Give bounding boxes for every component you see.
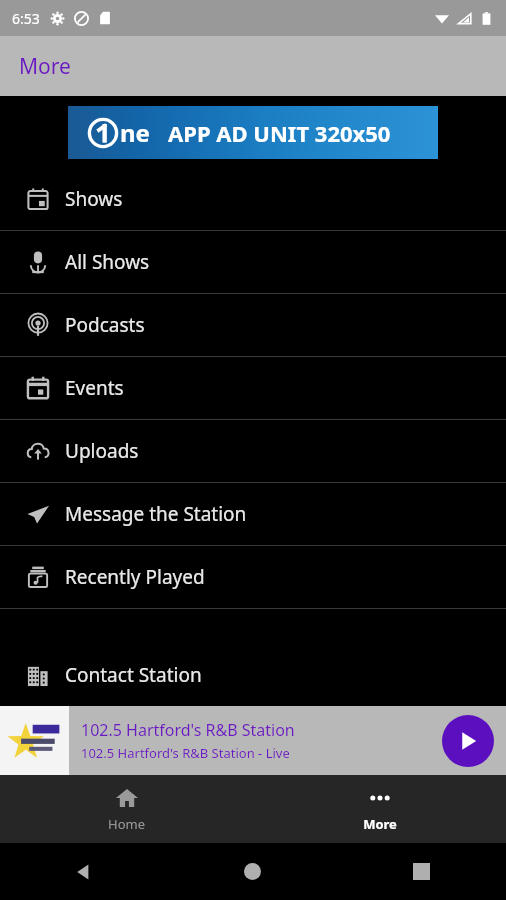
button[interactable]: 102.5 Hartford's R&B Station <box>0 706 506 775</box>
staticText: Contact Station <box>65 662 202 688</box>
staticText: Podcasts <box>65 312 145 338</box>
staticText: 102.5 Hartford's R&B Station - Live <box>81 744 290 762</box>
staticText: More <box>19 52 71 81</box>
other: Back <box>74 862 94 882</box>
button[interactable]: Shows <box>0 168 506 230</box>
staticText: All Shows <box>65 249 150 275</box>
button[interactable]: Play <box>442 715 494 767</box>
button[interactable]: Events <box>0 357 506 419</box>
staticText: APP AD UNIT 320x50 <box>168 118 391 148</box>
staticText: Recently Played <box>65 564 205 590</box>
staticText: Events <box>65 375 124 401</box>
button[interactable]: Recently Played <box>0 546 506 608</box>
button[interactable]: Contact Station <box>0 644 506 706</box>
staticText: Home <box>108 815 145 833</box>
button[interactable]: Message the Station <box>0 483 506 545</box>
button[interactable]: Podcasts <box>0 294 506 356</box>
staticText: More <box>363 815 397 833</box>
staticText: 102.5 Hartford's R&B Station <box>81 719 295 741</box>
other: Home <box>244 863 261 880</box>
button[interactable]: All Shows <box>0 231 506 293</box>
button[interactable]: Advertisement <box>68 106 438 159</box>
staticText: Shows <box>65 186 123 212</box>
staticText: Uploads <box>65 438 139 464</box>
button[interactable]: Uploads <box>0 420 506 482</box>
staticText: ne <box>120 116 150 149</box>
button[interactable]: More <box>253 775 506 843</box>
button[interactable]: Home <box>0 775 253 843</box>
staticText: Message the Station <box>65 501 247 527</box>
staticText: 6:53 <box>12 9 40 28</box>
